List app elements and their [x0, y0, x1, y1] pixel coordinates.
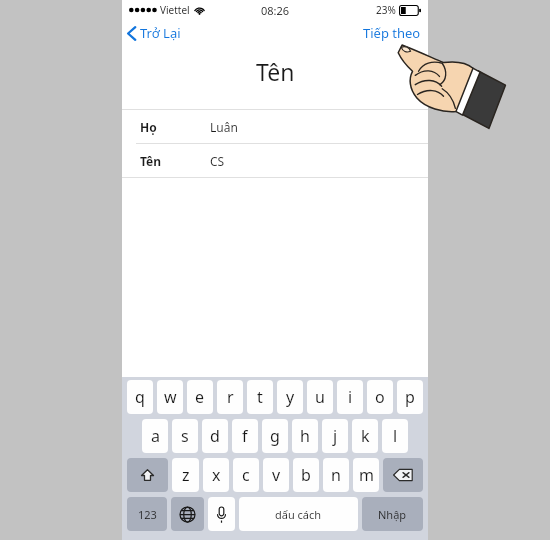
button[interactable]: u [307, 380, 333, 414]
button[interactable]: i [337, 380, 363, 414]
staticText: u [315, 386, 325, 408]
staticText: Tên [140, 153, 210, 169]
staticText: s [181, 425, 189, 447]
staticText: q [135, 386, 145, 408]
button[interactable]: f [232, 419, 258, 453]
button[interactable]: k [352, 419, 378, 453]
button[interactable]: x [203, 458, 229, 492]
button[interactable]: w [157, 380, 183, 414]
button[interactable]: Voice input [208, 497, 235, 531]
staticText: 08:26 [122, 3, 428, 18]
button[interactable]: Nhập [362, 497, 423, 531]
button[interactable]: Shift [127, 458, 168, 492]
button[interactable]: Tên [122, 144, 428, 177]
staticText: v [272, 464, 281, 486]
button[interactable]: j [322, 419, 348, 453]
button[interactable]: z [172, 458, 199, 492]
button[interactable]: dấu cách [239, 497, 358, 531]
button[interactable]: a [142, 419, 168, 453]
staticText: w [164, 386, 177, 408]
staticText: Tiếp theo [363, 24, 421, 42]
staticText: a [151, 425, 160, 447]
staticText: y [286, 386, 295, 408]
button[interactable]: q [127, 380, 153, 414]
staticText: x [212, 464, 221, 486]
button[interactable]: Tiếp theo [356, 21, 428, 45]
button[interactable]: Change keyboard language [171, 497, 204, 531]
button[interactable]: l [382, 419, 408, 453]
button[interactable]: s [172, 419, 198, 453]
staticText: h [300, 425, 310, 447]
button[interactable]: y [277, 380, 303, 414]
staticText: z [182, 464, 190, 486]
staticText: 123 [138, 507, 157, 522]
button[interactable]: b [293, 458, 319, 492]
staticText: Viettel [160, 3, 190, 17]
staticText: Luân [210, 119, 238, 135]
staticText: CS [210, 153, 225, 169]
button[interactable]: g [262, 419, 288, 453]
button[interactable]: m [353, 458, 379, 492]
button[interactable]: t [247, 380, 273, 414]
staticText: g [270, 425, 280, 447]
staticText: n [331, 464, 341, 486]
staticText: Trở Lại [140, 24, 181, 42]
staticText: e [195, 386, 205, 408]
staticText: j [333, 425, 338, 447]
staticText: dấu cách [275, 507, 322, 522]
button[interactable]: Họ [122, 110, 428, 143]
staticText: Tên [256, 56, 295, 87]
staticText: m [359, 464, 374, 486]
staticText: r [227, 386, 234, 408]
button[interactable]: p [397, 380, 423, 414]
button[interactable]: o [367, 380, 393, 414]
staticText: p [405, 386, 415, 408]
button[interactable]: 123 [127, 497, 167, 531]
staticText: c [242, 464, 250, 486]
staticText: t [257, 386, 263, 408]
staticText: l [393, 425, 398, 447]
staticText: f [242, 425, 248, 447]
staticText: o [375, 386, 385, 408]
button[interactable]: Trở Lại [122, 21, 187, 45]
button[interactable]: n [323, 458, 349, 492]
button[interactable]: v [263, 458, 289, 492]
button[interactable]: c [233, 458, 259, 492]
button[interactable]: r [217, 380, 243, 414]
staticText: d [210, 425, 220, 447]
staticText: Nhập [378, 507, 407, 522]
staticText: 23% [376, 3, 396, 17]
button[interactable]: h [292, 419, 318, 453]
staticText: b [301, 464, 311, 486]
button[interactable]: Backspace [383, 458, 423, 492]
button[interactable]: e [187, 380, 213, 414]
staticText: Họ [140, 119, 210, 135]
button[interactable]: d [202, 419, 228, 453]
staticText: i [348, 386, 353, 408]
staticText: k [361, 425, 370, 447]
